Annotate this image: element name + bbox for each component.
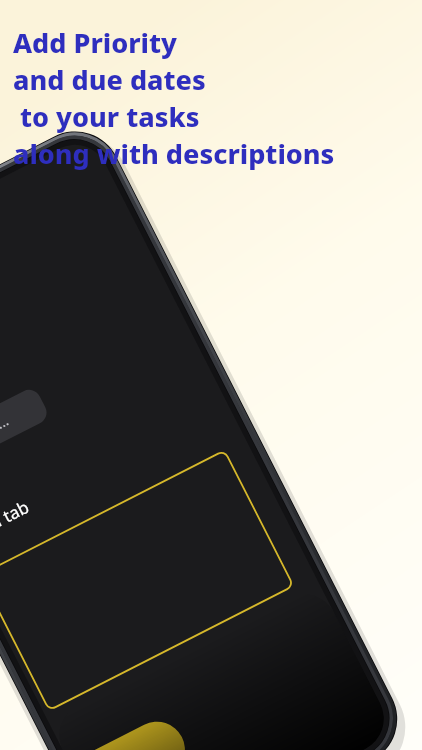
- staticText: along with descriptions: [13, 135, 335, 172]
- button[interactable]: Add Priority: [13, 0, 420, 750]
- button[interactable]: Description field: [0, 488, 140, 628]
- staticText: to your tasks: [13, 98, 200, 135]
- staticText: and due dates: [13, 61, 206, 98]
- staticText: Add Priority: [13, 24, 177, 61]
- button[interactable]: Create task: [0, 664, 98, 716]
